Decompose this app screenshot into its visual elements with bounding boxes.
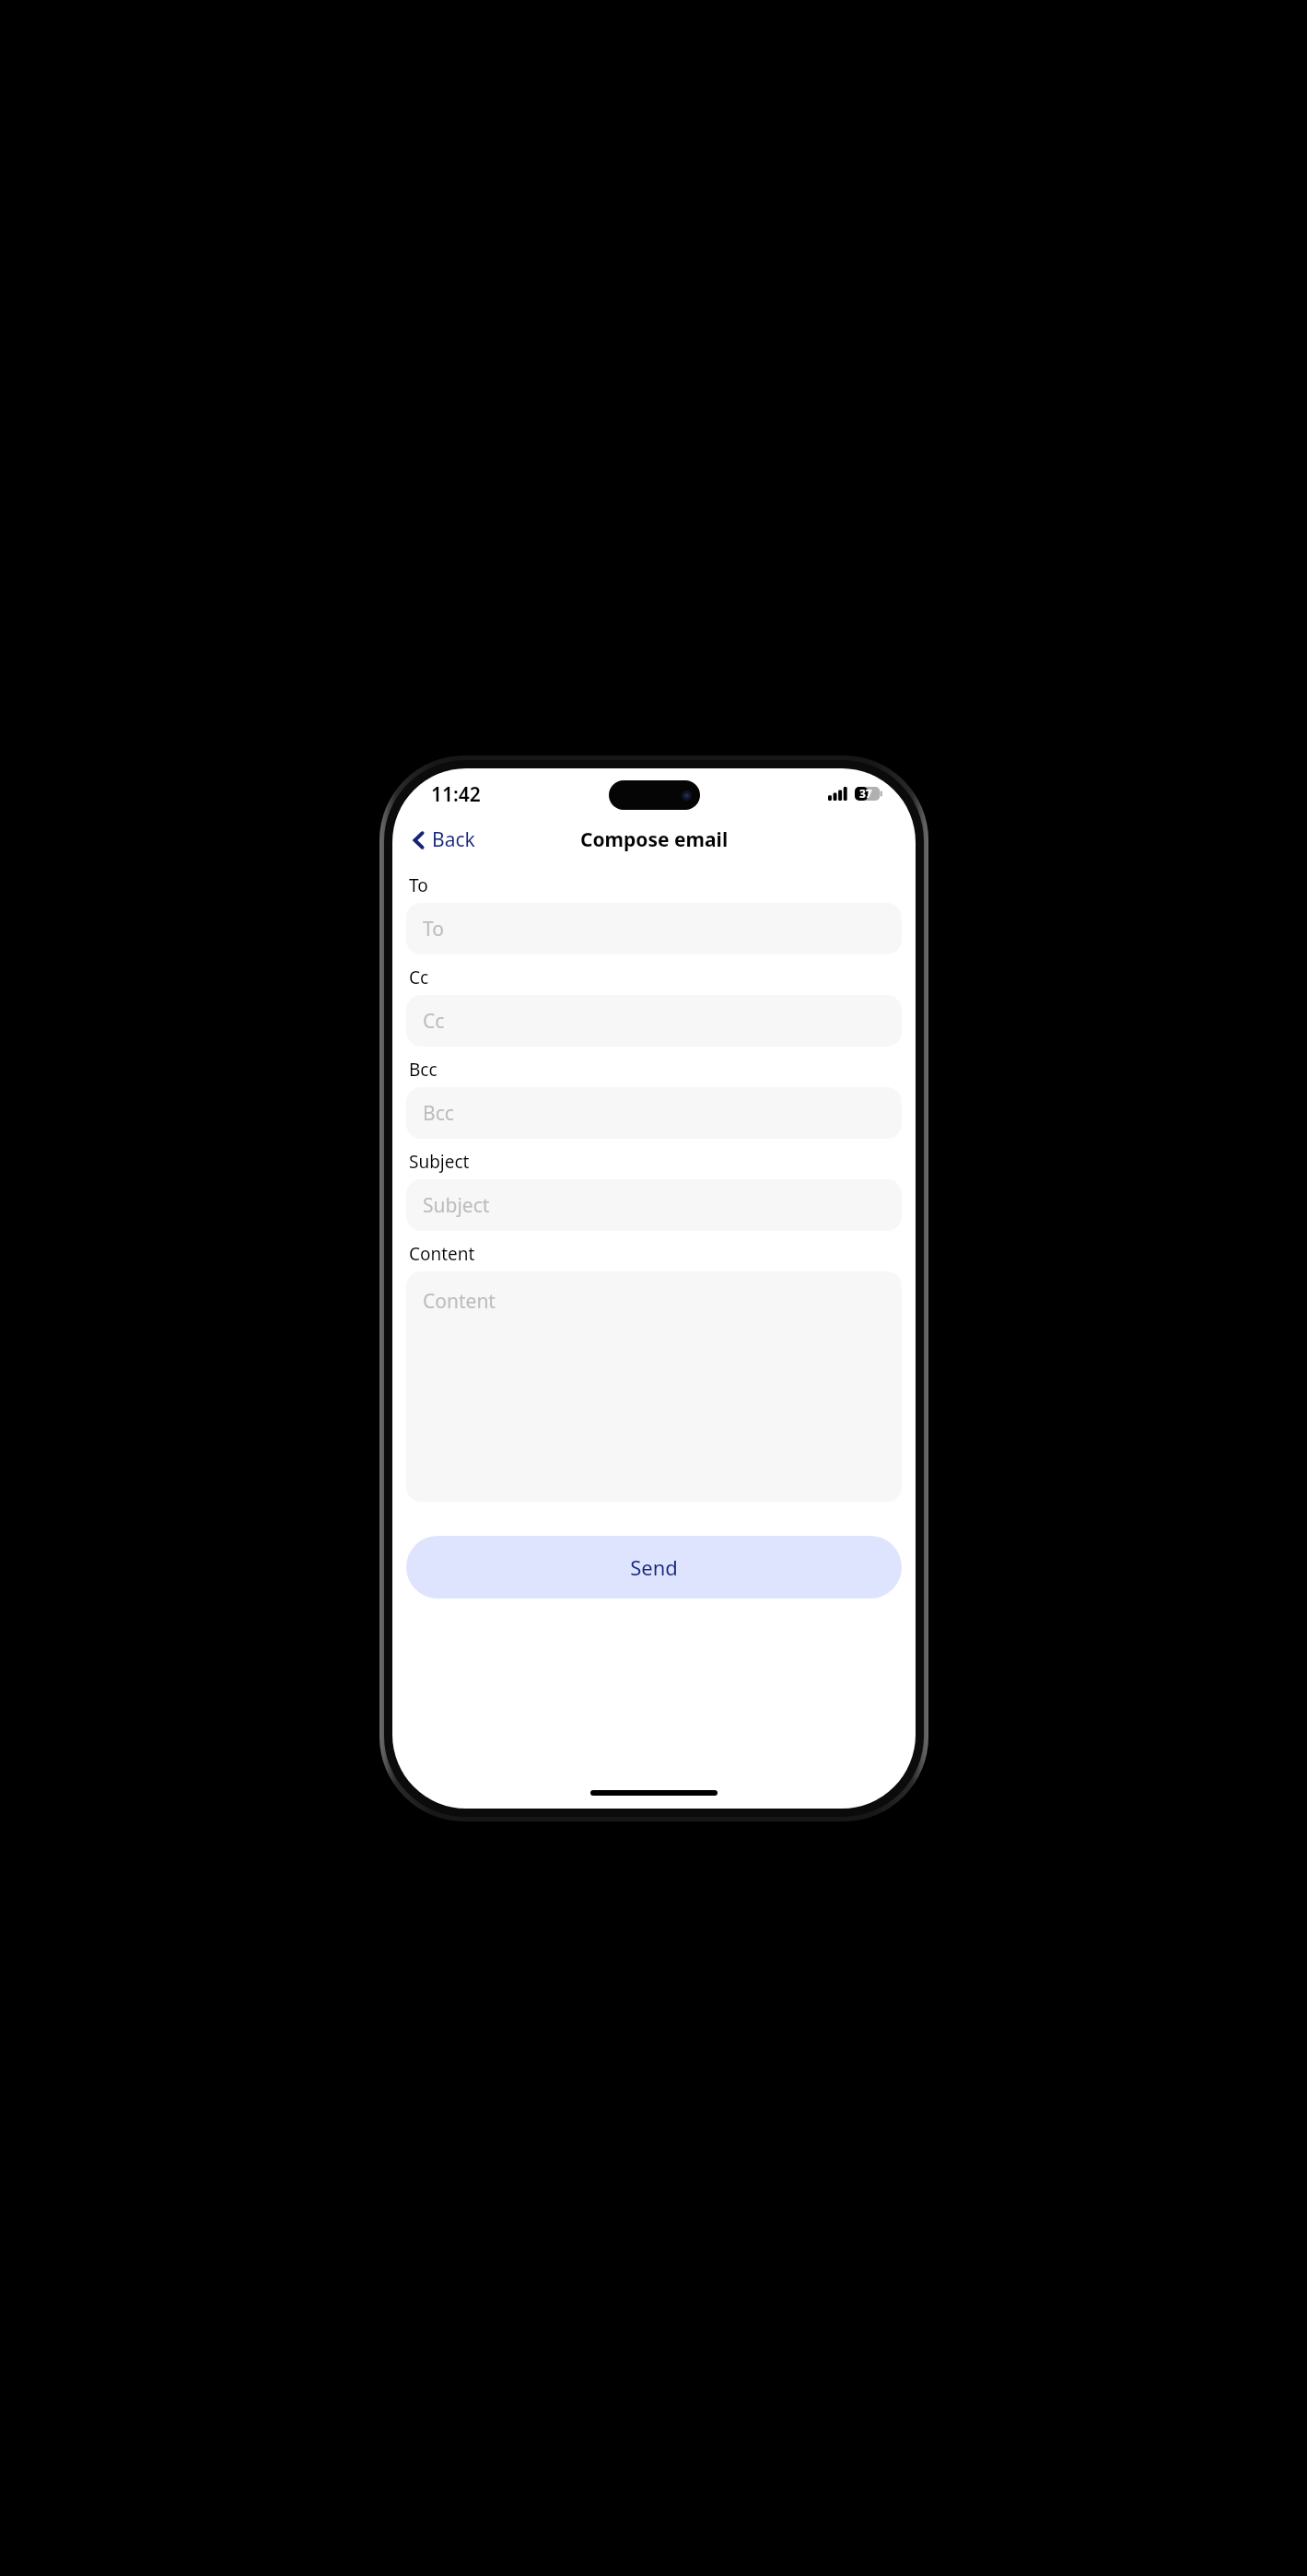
staticText: Bcc [423, 1100, 454, 1127]
staticText: 37 [859, 786, 872, 801]
staticText: Subject [423, 1192, 490, 1219]
staticText: Content [423, 1288, 496, 1315]
button[interactable]: Back [405, 823, 481, 857]
staticText: Cc [423, 1008, 445, 1035]
staticText: Content [409, 1242, 475, 1266]
staticText: To [423, 916, 444, 943]
staticText: Compose email [580, 826, 729, 853]
staticText: Cc [409, 966, 429, 989]
staticText: 11:42 [431, 781, 481, 808]
button[interactable]: Send [406, 1536, 902, 1598]
button[interactable]: To [406, 903, 902, 954]
button[interactable]: Subject [406, 1179, 902, 1231]
button[interactable]: Cc [406, 995, 902, 1047]
staticText: Send [630, 1553, 678, 1581]
staticText: Subject [409, 1150, 470, 1174]
staticText: Bcc [409, 1058, 438, 1082]
staticText: Back [432, 826, 475, 853]
staticText: To [409, 873, 428, 897]
button[interactable]: Bcc [406, 1087, 902, 1139]
